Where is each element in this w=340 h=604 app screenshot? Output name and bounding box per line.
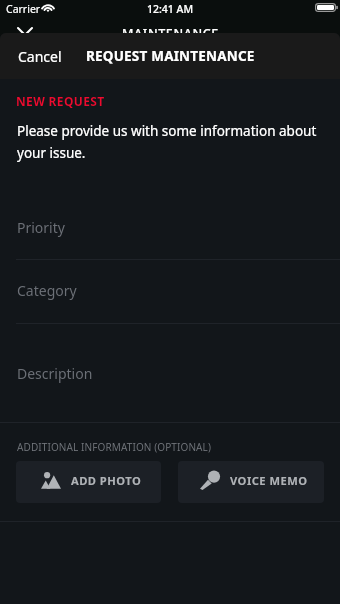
staticText: Priority <box>17 218 65 237</box>
staticText: Description <box>17 364 93 383</box>
staticText: 12:41 AM <box>147 2 194 16</box>
button[interactable]: ADD PHOTO <box>16 461 161 503</box>
staticText: VOICE MEMO <box>230 473 308 488</box>
staticText: NEW REQUEST <box>16 93 105 109</box>
staticText: ADD PHOTO <box>71 473 142 488</box>
staticText: Please provide us with some information … <box>17 122 338 162</box>
button[interactable]: Category <box>0 272 340 302</box>
button[interactable]: Cancel <box>0 36 78 77</box>
staticText: Category <box>17 281 77 300</box>
button[interactable]: Description <box>0 355 340 385</box>
staticText: ADDITIONAL INFORMATION (OPTIONAL) <box>17 440 212 454</box>
staticText: Cancel <box>18 47 62 66</box>
staticText: Carrier <box>6 2 41 16</box>
staticText: MAINTENANCE <box>122 25 219 42</box>
button[interactable]: Collapse <box>12 14 39 40</box>
button[interactable]: Priority <box>0 209 340 239</box>
staticText: REQUEST MAINTENANCE <box>86 47 255 65</box>
button[interactable]: VOICE MEMO <box>178 461 324 503</box>
